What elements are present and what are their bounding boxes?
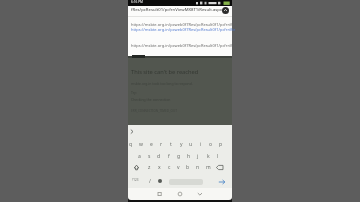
staticText: q bbox=[129, 141, 133, 148]
button[interactable] bbox=[128, 38, 232, 52]
staticText: l bbox=[217, 153, 219, 160]
staticText: ?123 bbox=[132, 178, 139, 182]
staticText: w bbox=[139, 141, 143, 148]
staticText: y bbox=[180, 141, 183, 148]
button[interactable] bbox=[170, 188, 190, 200]
staticText: a bbox=[138, 153, 141, 160]
staticText: b bbox=[186, 164, 190, 171]
staticText: t bbox=[170, 141, 172, 148]
staticText: v bbox=[177, 164, 180, 171]
staticText: https://msbte.org.in/pcweb0f7Res/pcResul… bbox=[131, 27, 235, 32]
staticText: x bbox=[158, 164, 161, 171]
staticText: j bbox=[197, 153, 199, 160]
staticText: s bbox=[148, 153, 151, 160]
staticText: n bbox=[196, 164, 200, 171]
button[interactable] bbox=[190, 188, 210, 200]
staticText: g bbox=[177, 153, 181, 160]
staticText: f bbox=[168, 153, 170, 160]
staticText: k bbox=[207, 153, 210, 160]
staticText: / bbox=[149, 178, 151, 185]
button[interactable] bbox=[222, 7, 229, 14]
staticText: u bbox=[189, 141, 193, 148]
staticText: z bbox=[148, 164, 151, 171]
staticText: fRes/pcResult01/pcfrnViewMX8T1iResult.as… bbox=[131, 7, 223, 13]
staticText: i bbox=[200, 141, 202, 148]
staticText: This site can't be reached bbox=[131, 68, 199, 76]
staticText: Checking the connection bbox=[131, 97, 171, 102]
staticText: ERR_CONNECTION_TIMED_OUT bbox=[131, 109, 177, 113]
staticText: Try: bbox=[131, 90, 137, 95]
staticText: o bbox=[209, 141, 213, 148]
staticText: r bbox=[160, 141, 163, 148]
staticText: c bbox=[168, 164, 171, 171]
staticText: h bbox=[187, 153, 191, 160]
staticText: https://msbte.org.in/pcweb0f7Res/pcResul… bbox=[131, 43, 233, 48]
staticText: p bbox=[219, 141, 223, 148]
staticText: https://msbte.org.in/pcweb0f7Res/pcResul… bbox=[131, 22, 233, 27]
staticText: 6:16 PM bbox=[131, 0, 143, 4]
staticText: d bbox=[157, 153, 161, 160]
button[interactable] bbox=[149, 188, 169, 200]
staticText: msbte.org.in took too long to respond. bbox=[131, 81, 193, 86]
button[interactable] bbox=[128, 16, 232, 33]
staticText: m bbox=[206, 164, 211, 171]
staticText: e bbox=[150, 141, 153, 148]
